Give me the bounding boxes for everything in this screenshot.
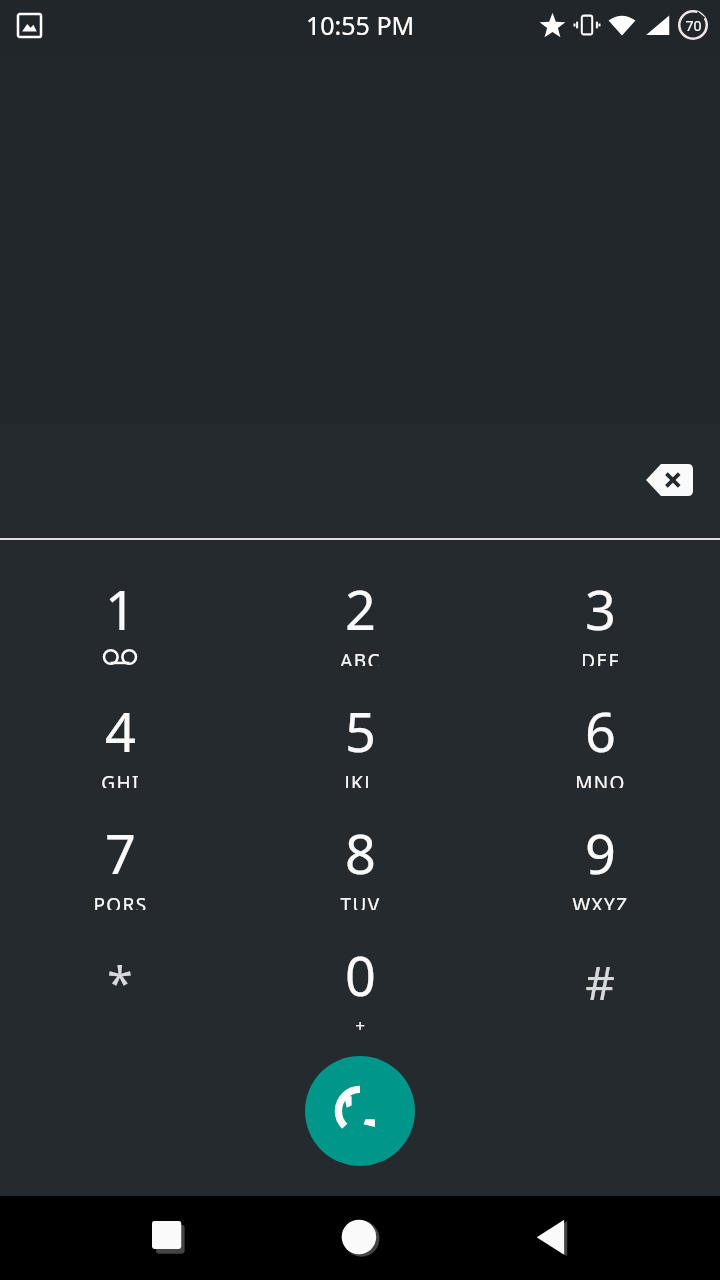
staticText: 0	[345, 938, 376, 1012]
button[interactable]: #	[480, 924, 720, 1046]
button[interactable]: 8	[240, 802, 480, 924]
button[interactable]: Back	[510, 1196, 600, 1280]
staticText: MNO	[575, 770, 626, 788]
staticText: 8	[345, 816, 376, 890]
staticText: 10:55 PM	[306, 8, 415, 42]
staticText: 6	[585, 694, 616, 768]
staticText: JKL	[344, 770, 376, 788]
staticText: ABC	[340, 648, 381, 666]
button[interactable]: 0	[240, 924, 480, 1046]
staticText: 7	[105, 816, 136, 890]
button[interactable]: Recent apps	[0, 1196, 720, 1280]
button[interactable]: Home	[315, 1196, 405, 1280]
staticText: 3	[585, 572, 616, 646]
button[interactable]: 9	[480, 802, 720, 924]
staticText: 1	[105, 572, 136, 646]
staticText: 5	[345, 694, 376, 768]
staticText: 70	[685, 16, 702, 35]
button[interactable]: 3	[480, 558, 720, 680]
button[interactable]: *	[0, 924, 240, 1046]
staticText: PQRS	[93, 892, 148, 910]
staticText: GHI	[101, 770, 140, 788]
button[interactable]: 4	[0, 680, 240, 802]
staticText: +	[355, 1014, 365, 1032]
staticText: #	[585, 951, 615, 1014]
button[interactable]: 1	[0, 558, 240, 680]
button[interactable]: Backspace	[632, 448, 706, 512]
staticText: 2	[345, 572, 376, 646]
button[interactable]: 5	[240, 680, 480, 802]
staticText: *	[107, 951, 133, 1014]
staticText: WXYZ	[572, 892, 629, 910]
button[interactable]: 2	[240, 558, 480, 680]
button[interactable]: 6	[480, 680, 720, 802]
staticText: 9	[585, 816, 616, 890]
staticText: DEF	[581, 648, 620, 666]
button[interactable]: Call	[305, 1056, 415, 1166]
staticText: TUV	[340, 892, 381, 910]
staticText: 4	[105, 694, 136, 768]
button[interactable]: 7	[0, 802, 240, 924]
